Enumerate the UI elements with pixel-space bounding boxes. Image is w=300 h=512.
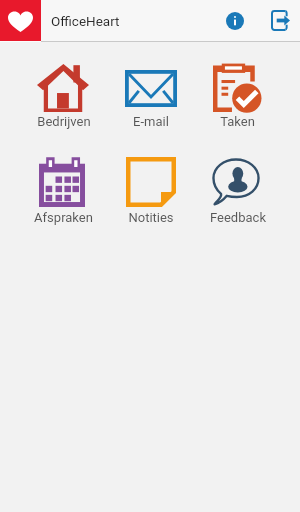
button[interactable]	[0, 0, 41, 41]
button[interactable]: Notities	[107, 156, 194, 225]
staticText: Notities	[128, 210, 174, 225]
staticText: Afspraken	[34, 210, 93, 225]
staticText: E-mail	[133, 114, 169, 129]
button[interactable]: Bedrijven	[20, 60, 107, 129]
staticText: OfficeHeart	[51, 13, 120, 29]
button[interactable]: Afspraken	[20, 156, 107, 225]
button[interactable]: Info	[218, 0, 252, 41]
button[interactable]: E-mail	[107, 60, 194, 129]
staticText: Taken	[220, 114, 255, 129]
staticText: Feedback	[210, 210, 266, 225]
button[interactable]: Logout	[261, 0, 297, 41]
button[interactable]: Taken	[194, 60, 281, 129]
button[interactable]: Feedback	[194, 156, 281, 225]
staticText: Bedrijven	[37, 114, 91, 129]
